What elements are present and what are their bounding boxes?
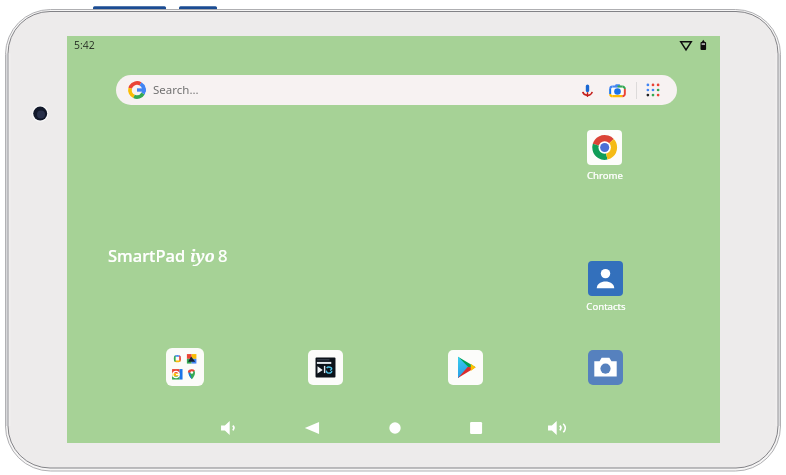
button[interactable]: Discovery	[296, 350, 355, 475]
button[interactable]: Chrome	[575, 130, 634, 475]
button[interactable]: Back	[296, 412, 328, 444]
staticText: Chrome	[587, 169, 623, 182]
button[interactable]: Google folder	[154, 348, 216, 475]
staticText: SmartPad	[108, 244, 186, 266]
staticText: 8	[218, 244, 228, 266]
button[interactable]: Home	[379, 412, 411, 444]
button[interactable]: Camera	[576, 350, 635, 475]
button[interactable]: Search...	[116, 75, 677, 105]
button[interactable]: Contacts	[576, 261, 635, 475]
button[interactable]: Volume up	[541, 412, 573, 444]
staticText: 5:42	[74, 38, 95, 52]
staticText: Search...	[153, 82, 199, 98]
button[interactable]: Play Store	[436, 350, 495, 475]
staticText: Contacts	[586, 300, 626, 313]
button[interactable]: Volume down	[214, 412, 246, 444]
button[interactable]: Recents	[460, 412, 492, 444]
staticText: iyo	[190, 244, 215, 266]
